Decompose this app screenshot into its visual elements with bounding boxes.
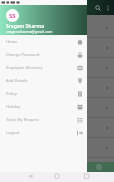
staticText: Add Details: [6, 78, 28, 83]
button[interactable]: Add Details: [0, 74, 87, 87]
button[interactable]: [0, 18, 114, 37]
staticText: Employee Directory: [6, 65, 43, 70]
staticText: Sragam Sharma: [6, 23, 45, 30]
staticText: Track My Request: [6, 117, 39, 122]
staticText: Holiday: [6, 104, 21, 109]
button[interactable]: Change Password: [0, 48, 87, 61]
button[interactable]: [0, 98, 114, 117]
button[interactable]: [0, 78, 114, 97]
button[interactable]: Home: [0, 35, 87, 48]
button[interactable]: [0, 58, 114, 77]
staticText: Logout: [6, 130, 20, 135]
staticText: Change Password: [6, 52, 40, 57]
button[interactable]: [0, 138, 114, 157]
button[interactable]: Logout: [0, 126, 87, 139]
staticText: SS: [9, 12, 16, 20]
staticText: sragamsharma@gmail.com: [6, 29, 53, 34]
button[interactable]: [0, 38, 114, 57]
button[interactable]: Holiday: [0, 100, 87, 113]
button[interactable]: More options: [103, 3, 113, 13]
button[interactable]: Add: [96, 164, 102, 170]
staticText: Policy: [6, 91, 17, 96]
button[interactable]: [0, 118, 114, 137]
button[interactable]: Search: [93, 3, 103, 13]
staticText: Home: [6, 39, 18, 44]
button[interactable]: Track My Request: [0, 113, 87, 126]
button[interactable]: Policy: [0, 87, 87, 100]
button[interactable]: Employee Directory: [0, 61, 87, 74]
